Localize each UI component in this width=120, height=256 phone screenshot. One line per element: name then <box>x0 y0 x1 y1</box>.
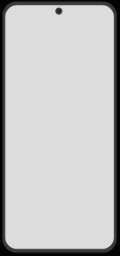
other: Phone device frame with a blank screen <box>0 0 120 256</box>
